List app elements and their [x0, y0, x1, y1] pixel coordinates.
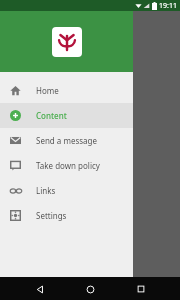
button[interactable]: Back [29, 278, 51, 300]
staticText: Content [36, 110, 67, 121]
button[interactable]: Back [29, 278, 51, 300]
button[interactable]: Home [79, 278, 101, 300]
staticText: 19:11 [159, 1, 177, 11]
button[interactable]: Take down policy [0, 153, 133, 178]
button[interactable]: Settings [0, 203, 133, 228]
staticText: Send a message [36, 135, 97, 146]
staticText: Take down policy [36, 160, 100, 171]
staticText: Settings [36, 210, 67, 221]
button[interactable]: Content [0, 103, 133, 128]
staticText: Links [36, 185, 56, 196]
button[interactable]: Recents [130, 278, 152, 300]
staticText: Home [36, 85, 59, 96]
button[interactable]: Recents [130, 278, 152, 300]
button[interactable]: Send a message [0, 128, 133, 153]
button[interactable]: Home [0, 78, 133, 103]
button[interactable]: Links [0, 178, 133, 203]
button[interactable]: Home [79, 278, 101, 300]
